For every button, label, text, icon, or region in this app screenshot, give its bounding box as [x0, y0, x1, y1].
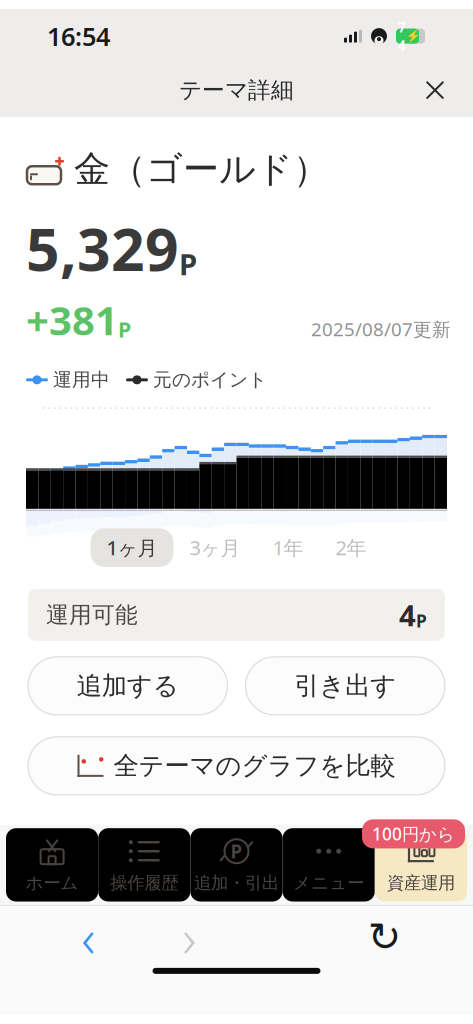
button[interactable]: 3ヶ月	[173, 528, 256, 567]
staticText: ›	[182, 901, 196, 972]
button[interactable]: 追加する	[28, 657, 227, 715]
button[interactable]: 引き出す	[245, 657, 445, 715]
staticText: 2025/08/07更新	[311, 317, 451, 341]
button[interactable]: 操作履歴	[98, 828, 190, 901]
staticText: ↻	[368, 914, 402, 960]
staticText: P	[230, 839, 242, 864]
staticText: 74	[398, 18, 406, 54]
staticText: 全テーマのグラフを比較	[113, 750, 395, 781]
staticText: 追加する	[77, 670, 179, 701]
button[interactable]: 全テーマのグラフを比較	[28, 737, 445, 795]
staticText: 引き出す	[294, 670, 396, 701]
button[interactable]: 1年	[256, 528, 319, 567]
staticText: +381	[26, 293, 118, 346]
button[interactable]: ホーム	[6, 828, 98, 901]
staticText: 運用可能	[46, 601, 138, 629]
button[interactable]: 資産運用	[375, 828, 467, 901]
staticText: ‹	[81, 901, 95, 972]
staticText: 16:54	[47, 19, 110, 53]
button[interactable]: 再読み込み	[358, 915, 412, 959]
staticText: 1ヶ月	[106, 534, 157, 561]
staticText: テーマ詳細	[179, 76, 294, 104]
staticText: 4	[399, 595, 416, 634]
staticText: 元のポイント	[153, 368, 267, 391]
button[interactable]: 戻る	[61, 915, 115, 959]
staticText: 金（ゴールド）	[74, 147, 329, 191]
button[interactable]: P	[190, 828, 283, 901]
button[interactable]: 1ヶ月	[90, 528, 173, 567]
staticText: P	[118, 315, 131, 343]
staticText: P	[179, 244, 197, 283]
staticText: 1年	[272, 534, 303, 561]
staticText: ⚡	[406, 29, 421, 43]
staticText: 資産運用	[387, 872, 455, 893]
staticText: ホーム	[26, 872, 79, 893]
staticText: 追加・引出	[194, 872, 279, 893]
staticText: 操作履歴	[110, 872, 178, 893]
staticText: 2年	[335, 534, 366, 561]
button[interactable]: 2年	[319, 528, 382, 567]
staticText: メニュー	[293, 872, 364, 893]
staticText: 運用中	[53, 368, 110, 391]
staticText: 5,329	[26, 209, 179, 287]
button[interactable]: 進む	[162, 915, 216, 959]
button[interactable]: メニュー	[283, 828, 375, 901]
staticText: P	[416, 609, 427, 632]
staticText: 3ヶ月	[189, 534, 240, 561]
button[interactable]: 閉じる	[413, 68, 457, 112]
staticText: 100円から	[372, 822, 455, 845]
